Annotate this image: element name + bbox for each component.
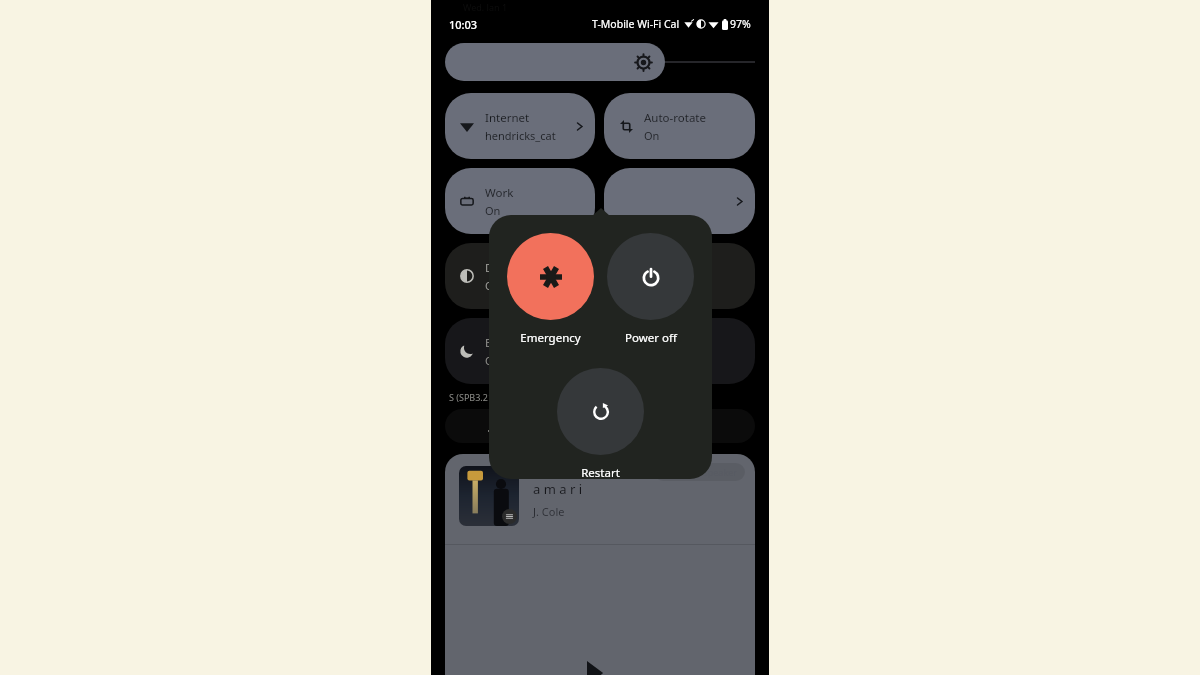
- staticText: Off: [485, 278, 502, 293]
- button[interactable]: Emergency: [507, 233, 594, 346]
- staticText: J. Cole: [533, 504, 565, 519]
- button[interactable]: Power off: [607, 233, 694, 346]
- button[interactable]: Dark theme: [445, 243, 595, 309]
- staticText: a m a r i: [533, 480, 582, 498]
- staticText: S (SPB3.210618.003): [449, 391, 535, 403]
- staticText: Dark theme: [485, 260, 549, 276]
- staticText: On: [485, 203, 501, 218]
- button[interactable]: Brightness: [445, 43, 665, 81]
- staticText: On: [644, 128, 660, 143]
- staticText: Off: [485, 353, 502, 368]
- button[interactable]: Work: [445, 168, 595, 234]
- staticText: Emergency: [520, 330, 581, 346]
- staticText: Restart: [581, 465, 620, 479]
- button[interactable]: Edit tiles: [445, 409, 543, 443]
- button[interactable]: Internet: [445, 93, 595, 159]
- button[interactable]: Settings: [551, 409, 649, 443]
- staticText: 10:03: [449, 17, 478, 32]
- staticText: Phone speaker: [674, 466, 738, 478]
- button[interactable]: Phone speaker: [654, 463, 745, 481]
- button[interactable]: [604, 243, 755, 309]
- button[interactable]: Restart: [557, 368, 644, 479]
- button[interactable]: Bedtime: [445, 318, 595, 384]
- staticText: Power off: [625, 330, 677, 346]
- staticText: hendricks_cat: [485, 128, 556, 143]
- button[interactable]: [604, 318, 755, 384]
- button[interactable]: [604, 168, 755, 234]
- staticText: Bedtime: [485, 335, 531, 351]
- button[interactable]: Auto-rotate: [604, 93, 755, 159]
- staticText: Work: [485, 185, 514, 201]
- staticText: Internet: [485, 110, 530, 126]
- staticText: 97%: [730, 17, 751, 31]
- staticText: Wed, Jan 1: [463, 1, 508, 11]
- button[interactable]: Power: [657, 409, 755, 443]
- staticText: Auto-rotate: [644, 110, 706, 126]
- button[interactable]: a m a r i: [445, 454, 755, 675]
- staticText: T-Mobile Wi-Fi Cal: [592, 17, 680, 31]
